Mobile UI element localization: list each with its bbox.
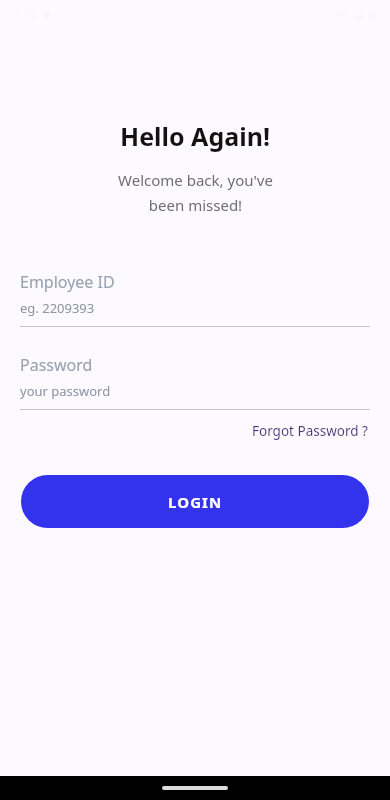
- staticText: Welcome back, you've been missed!: [118, 170, 273, 215]
- staticText: eg. 2209393: [20, 299, 95, 317]
- button[interactable]: Employee ID: [20, 271, 370, 327]
- staticText: Password: [20, 354, 93, 376]
- staticText: your password: [20, 382, 111, 400]
- button[interactable]: Forgot Password ?: [250, 419, 370, 443]
- other: Home gesture bar: [0, 776, 390, 800]
- staticText: Employee ID: [20, 271, 115, 293]
- staticText: Forgot Password ?: [252, 422, 368, 440]
- staticText: LOGIN: [168, 492, 223, 512]
- button[interactable]: LOGIN: [21, 475, 369, 528]
- staticText: Hello Again!: [120, 119, 270, 153]
- button[interactable]: Password: [20, 354, 370, 410]
